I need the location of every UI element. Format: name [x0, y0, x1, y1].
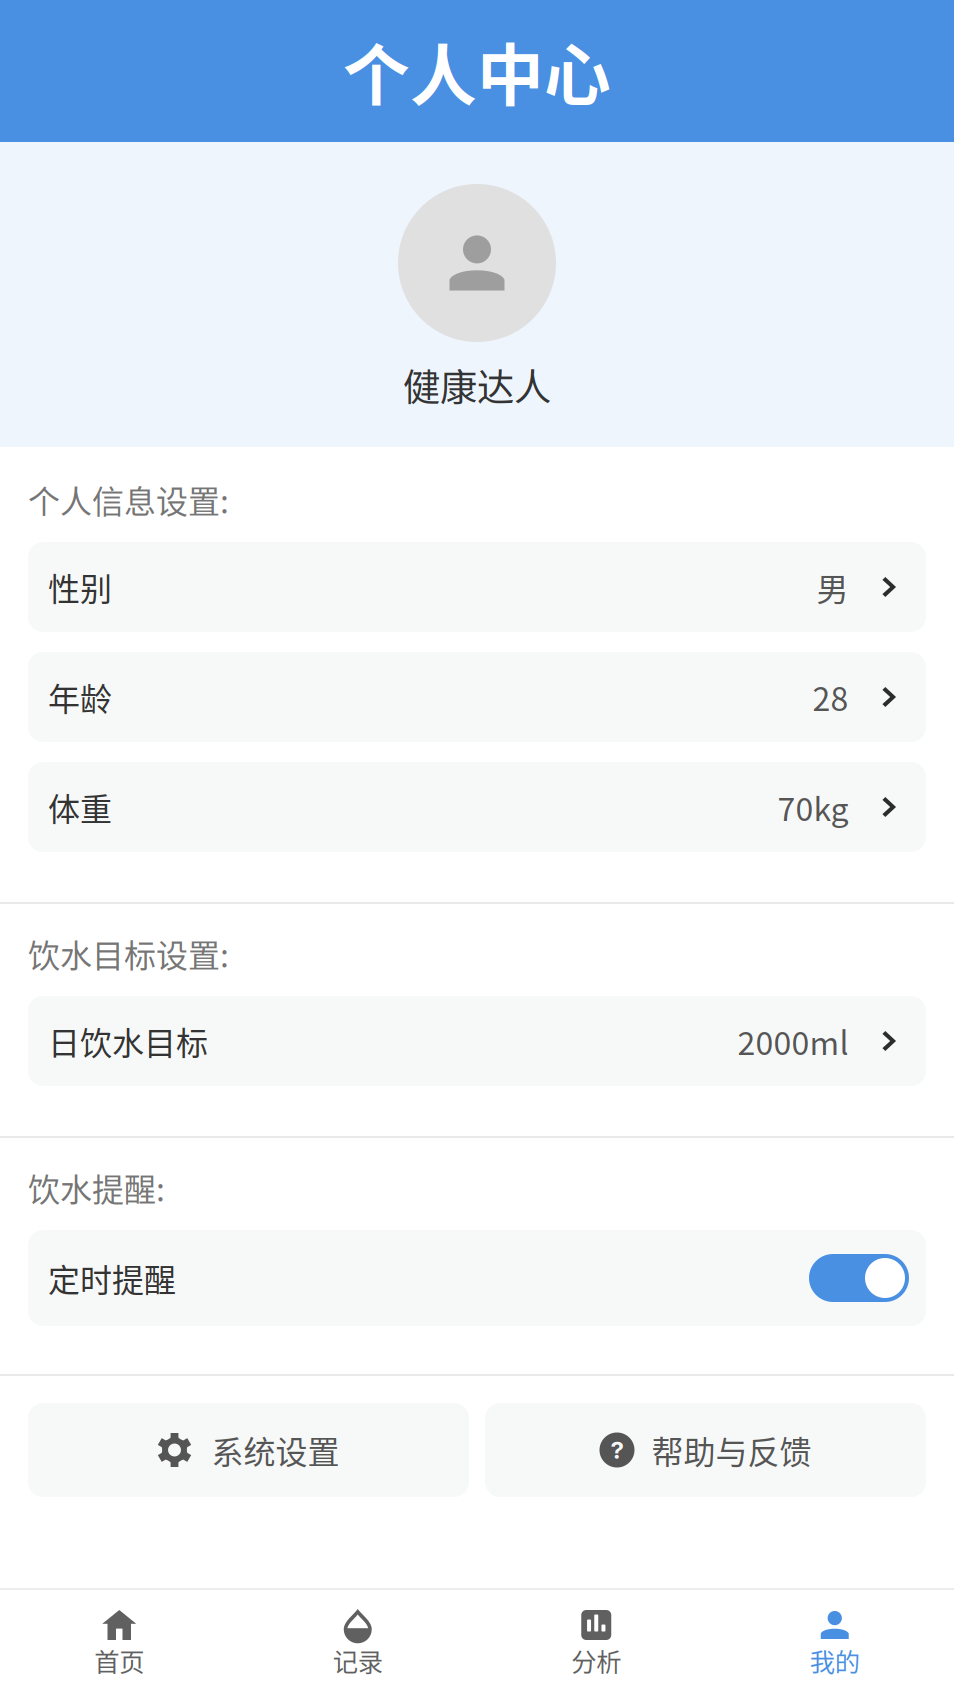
button[interactable]: 年龄	[28, 652, 926, 742]
staticText: 性别	[48, 564, 112, 610]
staticText: 我的	[810, 1642, 860, 1679]
button[interactable]: 日饮水目标	[28, 996, 926, 1086]
staticText: 健康达人	[403, 358, 551, 412]
staticText: 体重	[48, 784, 112, 830]
button[interactable]: 首页	[0, 1610, 238, 1679]
staticText: 28	[812, 674, 848, 720]
button[interactable]: 我的	[715, 1610, 954, 1679]
button[interactable]: 记录	[238, 1610, 477, 1679]
staticText: 定时提醒	[48, 1255, 176, 1301]
staticText: 2000ml	[737, 1018, 848, 1064]
staticText: 饮水提醒:	[28, 1164, 165, 1211]
button[interactable]: 性别	[28, 542, 926, 632]
staticText: 70kg	[777, 784, 848, 830]
staticText: 饮水目标设置:	[28, 930, 229, 977]
button[interactable]: 定时提醒	[28, 1230, 926, 1326]
staticText: 系统设置	[211, 1427, 339, 1473]
button[interactable]: 分析	[477, 1610, 715, 1679]
staticText: 日饮水目标	[48, 1018, 208, 1064]
button[interactable]: 系统设置	[28, 1403, 469, 1497]
staticText: 首页	[94, 1642, 144, 1679]
staticText: 年龄	[48, 674, 112, 720]
staticText: 男	[816, 564, 848, 610]
staticText: 帮助与反馈	[651, 1427, 811, 1473]
button[interactable]: ?	[485, 1403, 926, 1497]
button[interactable]: 体重	[28, 762, 926, 852]
staticText: 记录	[333, 1642, 383, 1679]
staticText: 分析	[571, 1642, 621, 1679]
staticText: 个人中心	[343, 23, 611, 119]
staticText: 个人信息设置:	[28, 476, 229, 523]
staticText: ?	[610, 1435, 623, 1464]
